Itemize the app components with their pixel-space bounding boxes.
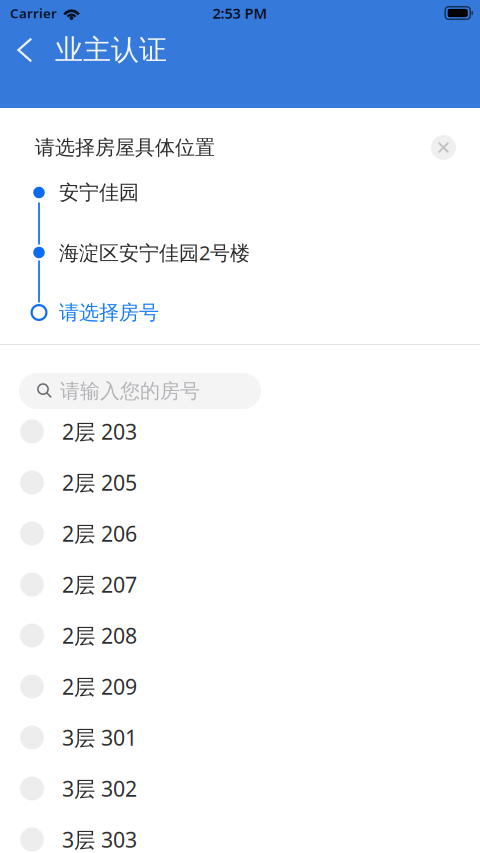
- staticText: 2层 203: [62, 417, 137, 446]
- staticText: Carrier: [10, 4, 57, 22]
- staticText: 请选择房屋具体位置: [35, 135, 215, 160]
- staticText: 2:53 PM: [212, 3, 267, 23]
- button[interactable]: 请输入您的房号: [19, 373, 261, 409]
- staticText: 3层 301: [62, 723, 137, 752]
- staticText: 3层 302: [62, 774, 137, 803]
- button[interactable]: 3层 301: [0, 712, 480, 763]
- button[interactable]: 安宁佳园: [29, 162, 480, 222]
- button[interactable]: 请选择房号: [29, 282, 480, 342]
- staticText: 安宁佳园: [59, 180, 139, 205]
- button[interactable]: 2层 206: [0, 508, 480, 559]
- button[interactable]: 2层 209: [0, 661, 480, 712]
- button[interactable]: Clear: [431, 135, 480, 160]
- button[interactable]: Back: [0, 28, 41, 72]
- button[interactable]: 2层 205: [0, 457, 480, 508]
- staticText: 请输入您的房号: [60, 379, 200, 403]
- button[interactable]: 2层 203: [0, 406, 480, 457]
- button[interactable]: 2层 208: [0, 610, 480, 661]
- button[interactable]: 2层 207: [0, 559, 480, 610]
- staticText: 2层 208: [62, 621, 137, 650]
- staticText: 2层 205: [62, 468, 137, 497]
- staticText: 2层 209: [62, 672, 137, 701]
- button[interactable]: 3层 303: [0, 814, 480, 853]
- staticText: 海淀区安宁佳园2号楼: [59, 239, 250, 266]
- staticText: 业主认证: [55, 33, 167, 67]
- staticText: 2层 207: [62, 570, 137, 599]
- staticText: 3层 303: [62, 825, 137, 853]
- button[interactable]: 3层 302: [0, 763, 480, 814]
- staticText: 2层 206: [62, 519, 137, 548]
- button[interactable]: 海淀区安宁佳园2号楼: [29, 222, 480, 282]
- staticText: 请选择房号: [59, 300, 159, 325]
